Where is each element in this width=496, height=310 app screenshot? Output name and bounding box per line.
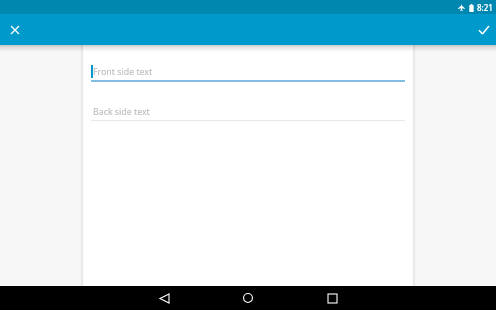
button[interactable]: Close — [4, 19, 26, 41]
button[interactable]: Recents — [322, 288, 342, 308]
staticText: Back side text — [93, 106, 150, 118]
button[interactable]: Back — [154, 288, 174, 308]
button[interactable]: Done — [473, 19, 495, 41]
staticText: Front side text — [93, 66, 153, 78]
button[interactable]: Home — [238, 288, 258, 308]
staticText: 8:21 — [477, 2, 493, 13]
